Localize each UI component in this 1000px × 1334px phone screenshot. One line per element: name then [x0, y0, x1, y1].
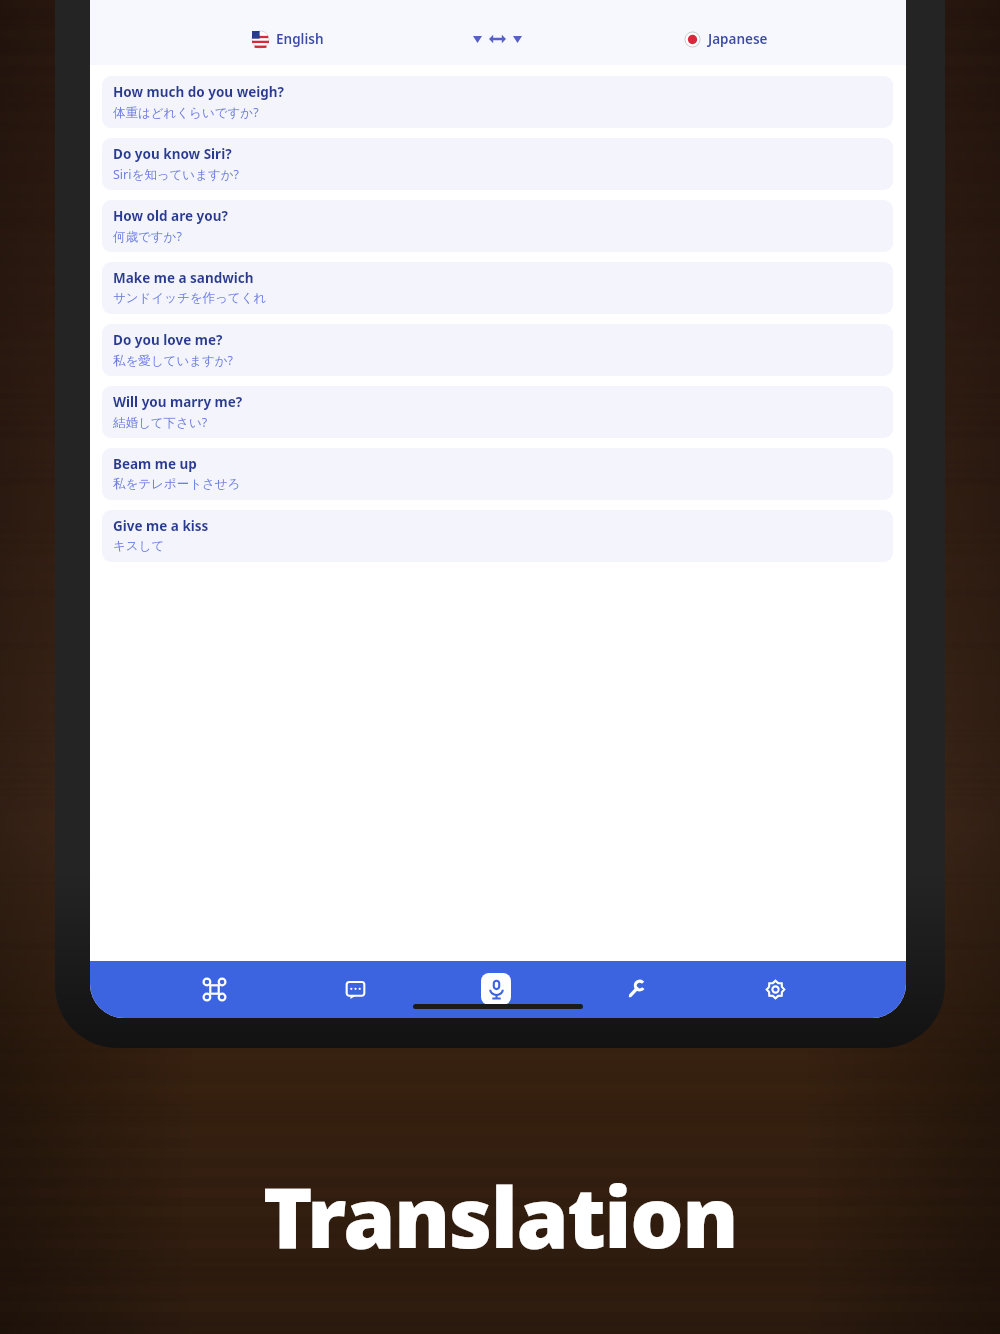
staticText: 何歳ですか? [113, 228, 182, 245]
staticText: 体重はどれくらいですか? [113, 104, 259, 121]
staticText: 私を愛していますか? [113, 352, 233, 369]
staticText: Do you know Siri? [113, 145, 232, 163]
staticText: Japanese [708, 30, 768, 48]
staticText: Siriを知っていますか? [113, 166, 239, 183]
staticText: How much do you weigh? [113, 83, 285, 101]
staticText: Will you marry me? [113, 393, 243, 411]
button[interactable]: Do you love me? [102, 324, 893, 376]
button[interactable]: Microphone [468, 967, 524, 1011]
button[interactable]: Do you know Siri? [102, 138, 893, 190]
button[interactable]: Japanese [681, 28, 772, 50]
button[interactable]: Swap languages [470, 31, 525, 47]
staticText: 私をテレポートさせろ [113, 476, 241, 492]
staticText: How old are you? [113, 207, 228, 225]
button[interactable]: Settings [747, 967, 803, 1011]
button[interactable]: Will you marry me? [102, 386, 893, 438]
button[interactable]: How old are you? [102, 200, 893, 252]
staticText: 結婚して下さい? [113, 414, 208, 431]
button[interactable]: Conversation [327, 967, 383, 1011]
staticText: Do you love me? [113, 331, 223, 349]
staticText: キスして [113, 538, 165, 554]
button[interactable]: How much do you weigh? [102, 76, 893, 128]
staticText: Beam me up [113, 455, 197, 473]
button[interactable]: Tools [607, 967, 663, 1011]
button[interactable]: Beam me up [102, 448, 893, 500]
staticText: サンドイッチを作ってくれ [113, 290, 267, 306]
staticText: Make me a sandwich [113, 269, 254, 287]
button[interactable]: English [248, 28, 328, 50]
button[interactable]: Phrases [186, 967, 242, 1011]
button[interactable]: Give me a kiss [102, 510, 893, 562]
staticText: Give me a kiss [113, 517, 209, 535]
button[interactable]: Make me a sandwich [102, 262, 893, 314]
staticText: Translation [263, 1158, 737, 1272]
staticText: English [276, 30, 324, 48]
